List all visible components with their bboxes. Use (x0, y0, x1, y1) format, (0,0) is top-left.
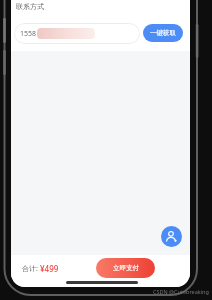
button[interactable]: 1558 (14, 23, 140, 44)
staticText: ¥499 (40, 263, 59, 274)
button[interactable]: 一键获取 (143, 24, 183, 42)
staticText: CSDN @Cutebreaking (153, 288, 209, 295)
staticText: 一键获取 (150, 29, 176, 37)
staticText: 立即支付 (113, 264, 139, 272)
staticText: 1558 (20, 29, 37, 39)
button[interactable] (161, 226, 182, 247)
button[interactable]: 立即支付 (96, 258, 155, 278)
staticText: 合计: (22, 264, 40, 274)
staticText: 联系方式 (16, 2, 44, 11)
